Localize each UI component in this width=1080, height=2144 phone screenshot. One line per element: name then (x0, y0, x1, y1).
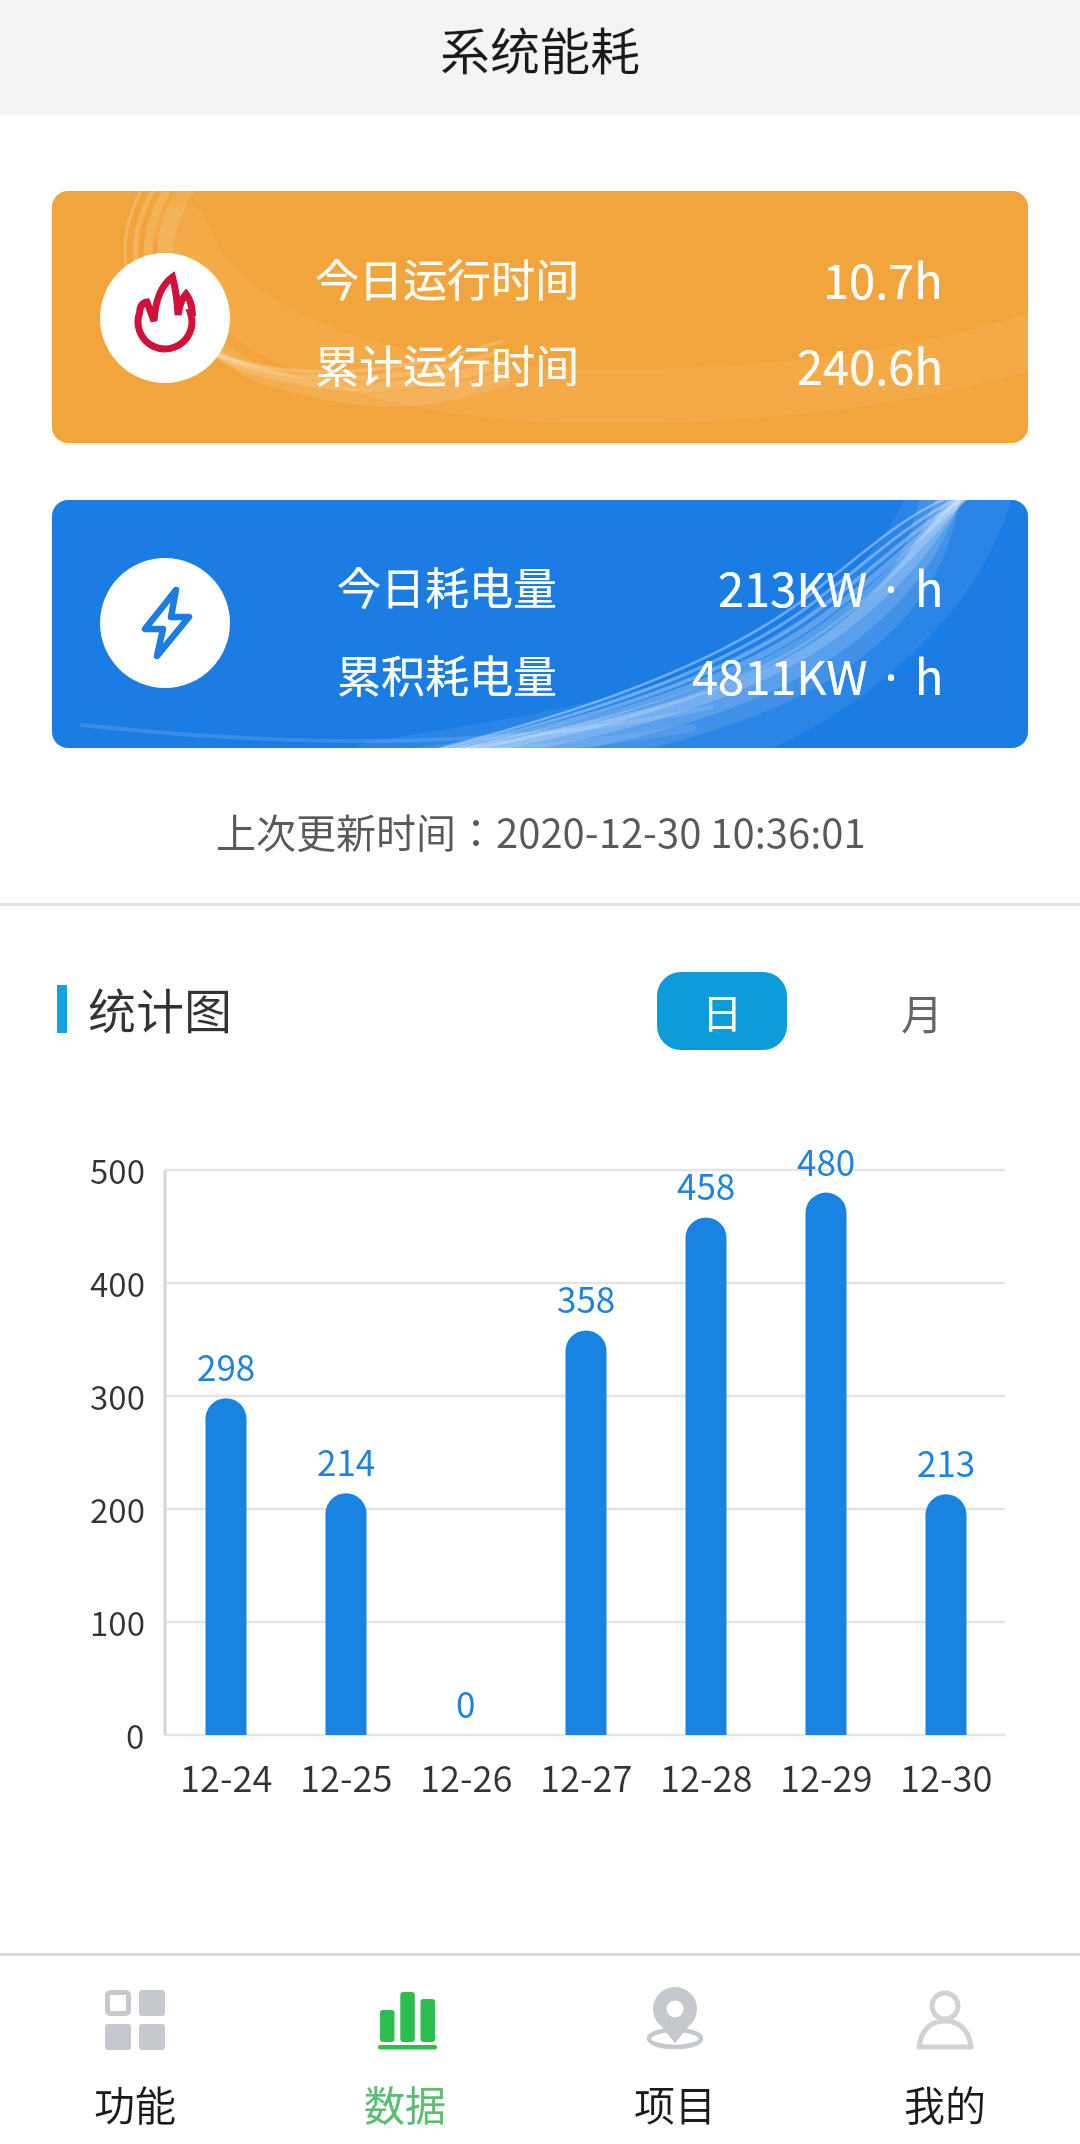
staticText: 功能 (94, 2073, 176, 2132)
staticText: 月 (901, 981, 944, 1042)
staticText: 300 (90, 1372, 145, 1420)
staticText: 12-27 (540, 1750, 633, 1802)
button[interactable] (540, 1956, 810, 2144)
button[interactable]: 日 (657, 972, 787, 1050)
button[interactable]: 今日耗电量 (52, 500, 1028, 748)
button[interactable]: 今日运行时间 (52, 191, 1028, 443)
staticText: 12-24 (180, 1750, 273, 1802)
staticText: 400 (90, 1259, 145, 1307)
staticText: 12-26 (420, 1750, 513, 1802)
button[interactable] (0, 1956, 270, 2144)
staticText: 数据 (364, 2073, 446, 2132)
button[interactable]: 月 (862, 972, 982, 1050)
button[interactable] (810, 1956, 1080, 2144)
button[interactable] (270, 1956, 540, 2144)
staticText: 0 (126, 1711, 145, 1759)
staticText: 214 (317, 1435, 376, 1486)
staticText: 统计图 (88, 973, 233, 1043)
staticText: 今日耗电量 (337, 554, 557, 618)
staticText: 我的 (904, 2073, 986, 2132)
staticText: 累计运行时间 (315, 332, 579, 396)
staticText: 12-28 (660, 1750, 753, 1802)
staticText: 4811KW · h (692, 640, 944, 708)
staticText: 12-29 (780, 1750, 873, 1802)
staticText: 500 (90, 1146, 145, 1194)
staticText: 上次更新时间：2020-12-30 10:36:01 (216, 802, 866, 860)
staticText: 213KW · h (718, 552, 944, 620)
staticText: 系统能耗 (440, 12, 640, 84)
staticText: 日 (702, 982, 742, 1040)
staticText: 458 (677, 1159, 736, 1210)
staticText: 12-25 (300, 1750, 393, 1802)
staticText: 298 (197, 1340, 256, 1391)
staticText: 10.7h (823, 244, 943, 312)
staticText: 213 (917, 1436, 976, 1487)
staticText: 项目 (634, 2073, 716, 2132)
staticText: 240.6h (797, 330, 943, 398)
staticText: 200 (90, 1485, 145, 1533)
staticText: 358 (557, 1272, 616, 1323)
staticText: 12-30 (900, 1750, 993, 1802)
staticText: 100 (90, 1598, 145, 1646)
staticText: 480 (797, 1135, 856, 1186)
staticText: 今日运行时间 (315, 246, 579, 310)
staticText: 累积耗电量 (337, 642, 557, 706)
staticText: 0 (456, 1677, 476, 1728)
